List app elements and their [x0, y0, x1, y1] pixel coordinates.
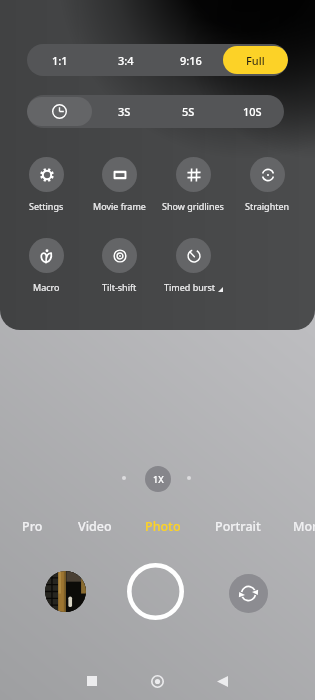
button[interactable]: Movie frame [83, 157, 156, 212]
button[interactable]: Macro [10, 238, 83, 293]
button[interactable]: Tilt-shift [83, 238, 156, 293]
staticText: Tilt-shift [102, 281, 137, 293]
staticText: 5S [182, 104, 195, 119]
staticText: Portrait [215, 518, 261, 535]
button[interactable]: 3:4 [93, 46, 158, 74]
staticText: Pro [22, 518, 43, 535]
staticText: Video [78, 518, 112, 535]
staticText: 3:4 [118, 53, 134, 68]
staticText: Settings [29, 200, 64, 212]
button[interactable]: 5S [156, 97, 220, 126]
button[interactable]: Home [139, 663, 175, 699]
button[interactable]: Settings [10, 157, 83, 212]
button[interactable]: 1X [145, 466, 171, 492]
button[interactable]: Timed burst [156, 238, 230, 293]
button[interactable]: Back [204, 663, 240, 699]
staticText: 9:16 [180, 53, 202, 68]
staticText: 10S [243, 104, 262, 119]
button[interactable]: 10S [220, 97, 284, 126]
button[interactable]: 1:1 [27, 46, 93, 74]
staticText: 1X [153, 473, 164, 485]
button[interactable]: Video [78, 515, 112, 538]
button[interactable]: Pro [22, 515, 43, 538]
staticText: More [293, 518, 315, 535]
button[interactable]: Recents [74, 663, 110, 699]
button[interactable]: 3S [92, 97, 156, 126]
staticText: 1:1 [52, 53, 68, 68]
staticText: Movie frame [93, 200, 146, 212]
staticText: Macro [33, 281, 60, 293]
button[interactable]: Take photo [127, 563, 184, 620]
staticText: Show gridlines [162, 200, 224, 212]
staticText: Timed burst [164, 281, 216, 293]
button[interactable]: More [293, 515, 315, 538]
button[interactable] [27, 97, 92, 126]
button[interactable]: 9:16 [158, 46, 223, 74]
button[interactable]: Show gridlines [156, 157, 230, 212]
button[interactable]: Photo [145, 515, 181, 538]
button[interactable]: Switch camera [229, 574, 268, 613]
button[interactable]: Last photo [45, 571, 86, 612]
staticText: Straighten [245, 200, 290, 212]
staticText: Full [246, 53, 265, 68]
button[interactable]: Full [223, 46, 288, 74]
button[interactable]: Straighten [230, 157, 304, 212]
button[interactable]: Portrait [215, 515, 261, 538]
staticText: 3S [118, 104, 131, 119]
staticText: Photo [145, 518, 181, 535]
